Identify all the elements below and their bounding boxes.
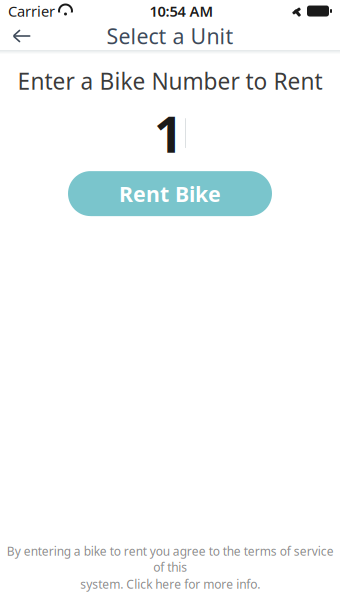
button[interactable]: By entering a bike to rent you agree to … [0, 543, 340, 604]
staticText: Rent Bike [119, 179, 221, 208]
staticText: By entering a bike to rent you agree to … [6, 543, 333, 575]
staticText: system. Click here for more info. [80, 576, 260, 592]
staticText: 10:54 AM [149, 1, 213, 21]
staticText: 1 [154, 99, 183, 167]
staticText: Select a Unit [106, 22, 233, 50]
staticText: Enter a Bike Number to Rent [17, 66, 322, 96]
button[interactable]: Back [0, 22, 44, 50]
button[interactable]: Rent Bike [68, 171, 272, 216]
staticText: Carrier [8, 1, 55, 21]
